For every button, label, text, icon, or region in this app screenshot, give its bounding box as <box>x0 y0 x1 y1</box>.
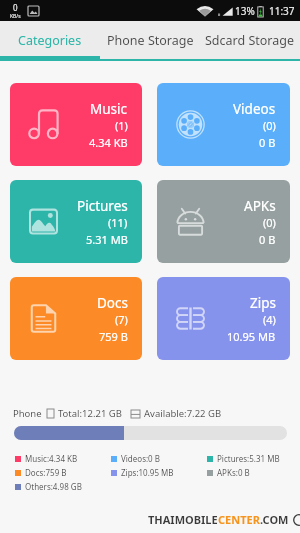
staticText: 13% <box>235 4 255 18</box>
staticText: Zips:10.95 MB <box>121 467 174 478</box>
staticText: Phone <box>13 407 42 420</box>
staticText: (0) <box>263 215 276 230</box>
staticText: APKs:0 B <box>217 467 250 478</box>
button[interactable]: Zips <box>157 277 290 360</box>
staticText: (11) <box>108 215 128 230</box>
staticText: 759 B <box>99 329 128 344</box>
staticText: KB/s <box>10 13 21 20</box>
staticText: 0 B <box>259 232 276 247</box>
button[interactable]: Pictures <box>10 180 142 263</box>
staticText: 5.31 MB <box>86 232 128 247</box>
staticText: (4) <box>263 312 276 327</box>
staticText: 0 <box>13 2 18 13</box>
button[interactable]: Categories <box>0 21 100 59</box>
staticText: Videos <box>233 100 276 118</box>
staticText: APKs <box>244 197 276 215</box>
button[interactable]: APKs <box>157 180 290 263</box>
staticText: Docs <box>97 294 128 312</box>
staticText: Music <box>90 100 128 118</box>
staticText: CENTER <box>218 512 260 527</box>
staticText: Pictures <box>77 197 128 215</box>
staticText: Pictures:5.31 MB <box>217 453 280 464</box>
staticText: Videos:0 B <box>121 453 160 464</box>
staticText: .COM <box>260 512 289 527</box>
staticText: Total:12.21 GB <box>58 407 122 420</box>
staticText: Phone Storage <box>107 32 194 49</box>
staticText: 11:37 <box>269 4 295 18</box>
staticText: 4.34 KB <box>89 135 128 150</box>
button[interactable]: Phone Storage <box>100 21 200 59</box>
staticText: Zips <box>250 294 276 312</box>
staticText: (1) <box>115 118 128 133</box>
staticText: Sdcard Storage <box>205 32 295 49</box>
button[interactable]: Videos <box>157 83 290 166</box>
staticText: THAIMOBILE <box>148 512 218 527</box>
staticText: (0) <box>263 118 276 133</box>
staticText: Music:4.34 KB <box>25 453 78 464</box>
staticText: Others:4.98 GB <box>25 481 82 492</box>
staticText: (7) <box>115 312 128 327</box>
button[interactable]: Sdcard Storage <box>200 21 300 59</box>
staticText: Docs:759 B <box>25 467 67 478</box>
staticText: Available:7.22 GB <box>144 407 222 420</box>
staticText: 10.95 MB <box>227 329 276 344</box>
staticText: Categories <box>18 32 82 49</box>
button[interactable]: Music <box>10 83 142 166</box>
button[interactable]: Docs <box>10 277 142 360</box>
staticText: 0 B <box>259 135 276 150</box>
